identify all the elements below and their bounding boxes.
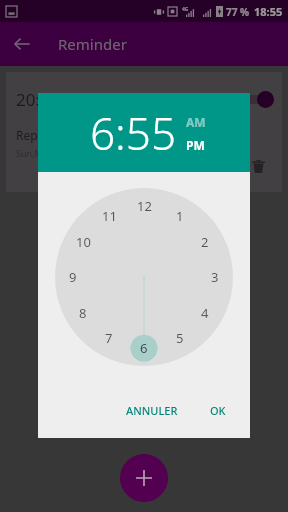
staticText: Sun,Mon	[16, 147, 54, 159]
button[interactable]: 6:55	[90, 103, 177, 163]
button[interactable]: Toggle reminder	[240, 90, 274, 108]
staticText: PM	[186, 137, 205, 153]
button[interactable]: 2	[193, 230, 217, 254]
staticText: 1	[176, 207, 184, 225]
button[interactable]: AM	[186, 114, 206, 130]
staticText: 12	[137, 197, 152, 215]
staticText: 18:55	[254, 4, 283, 19]
staticText: 9	[69, 268, 77, 286]
staticText: 20:00	[16, 88, 60, 111]
staticText: 10	[76, 233, 91, 251]
button[interactable]: 3	[203, 265, 227, 289]
button[interactable]: 5	[168, 326, 192, 350]
staticText: 4	[201, 304, 209, 322]
button[interactable]: 11	[97, 204, 121, 228]
button[interactable]: 10	[71, 230, 95, 254]
button[interactable]: 4	[193, 301, 217, 325]
staticText: OK	[210, 403, 226, 418]
button[interactable]: Back	[0, 22, 44, 66]
button[interactable]: 20:00	[6, 72, 282, 192]
button[interactable]: Delete	[246, 154, 270, 178]
staticText: 4G	[182, 6, 189, 13]
staticText: 7	[105, 329, 113, 347]
staticText: 8	[79, 304, 87, 322]
staticText: Reminder	[58, 34, 127, 54]
staticText: 77 %	[226, 5, 250, 19]
button[interactable]: 1	[168, 204, 192, 228]
button[interactable]: 7	[97, 326, 121, 350]
staticText: Repeat	[16, 127, 56, 143]
button[interactable]: 9	[61, 265, 85, 289]
staticText: ANNULER	[126, 403, 178, 418]
button[interactable]: OK	[200, 395, 236, 426]
button[interactable]: ANNULER	[116, 395, 188, 426]
button[interactable]: PM	[186, 137, 205, 153]
staticText: 6	[140, 339, 148, 357]
button[interactable]: Add reminder	[120, 454, 168, 502]
staticText: 11	[102, 207, 117, 225]
button[interactable]: 8	[71, 301, 95, 325]
staticText: 3	[211, 268, 219, 286]
button[interactable]: 12	[132, 194, 156, 218]
staticText: 6:55	[90, 103, 177, 163]
staticText: 2	[201, 233, 209, 251]
staticText: 5	[176, 329, 184, 347]
button[interactable]: 6	[132, 336, 156, 360]
staticText: AM	[186, 114, 206, 130]
